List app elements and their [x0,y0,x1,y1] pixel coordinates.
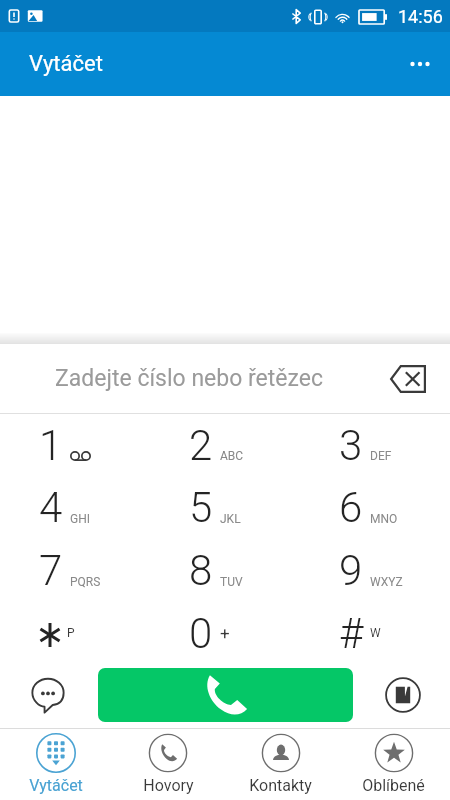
button[interactable]: 1 [0,414,150,476]
staticText: 1 [39,421,63,470]
staticText: MNO [370,512,398,526]
button[interactable]: P [0,602,150,665]
button[interactable]: Contacts [380,672,426,718]
staticText: TUV [220,575,243,589]
button[interactable]: 7 [0,539,150,602]
button[interactable]: Call [98,668,353,722]
button[interactable]: 5 [150,476,300,539]
staticText: 4 [39,483,63,532]
staticText: 5 [189,483,213,532]
staticText: DEF [370,449,392,463]
button[interactable]: Messages [25,672,71,718]
staticText: JKL [220,512,241,526]
staticText: 7 [39,546,63,595]
staticText: WXYZ [370,575,403,589]
staticText: 14:56 [398,6,443,27]
button[interactable]: 6 [300,476,450,539]
staticText: 9 [339,546,363,595]
staticText: 6 [339,483,363,532]
button[interactable]: More options [396,40,444,88]
staticText: W [370,626,381,640]
staticText: 0 [189,609,213,658]
staticText: Kontakty [249,776,312,795]
button[interactable]: 0 [150,602,300,665]
staticText: 2 [189,421,213,470]
staticText: Zadejte číslo nebo řetězec [55,365,324,392]
button[interactable]: 2 [150,414,300,476]
staticText: GHI [70,512,90,526]
button[interactable]: 4 [0,476,150,539]
button[interactable]: 9 [300,539,450,602]
button[interactable]: Oblíbené [337,729,450,800]
staticText: P [67,626,75,640]
staticText: PQRS [70,575,101,589]
button[interactable]: Vytáčet [0,729,112,800]
staticText: # [339,609,364,658]
staticText: Hovory [143,776,194,795]
staticText: Vytáčet [29,776,83,795]
button[interactable]: Hovory [112,729,224,800]
button[interactable]: # [300,602,450,665]
staticText: + [220,623,230,643]
staticText: Vytáčet [29,51,103,77]
button[interactable]: 3 [300,414,450,476]
button[interactable]: Kontakty [224,729,337,800]
staticText: 3 [339,421,363,470]
button[interactable]: 8 [150,539,300,602]
staticText: ABC [220,449,244,463]
button[interactable]: Backspace [384,355,432,403]
staticText: Oblíbené [362,776,425,795]
staticText: 8 [189,546,213,595]
